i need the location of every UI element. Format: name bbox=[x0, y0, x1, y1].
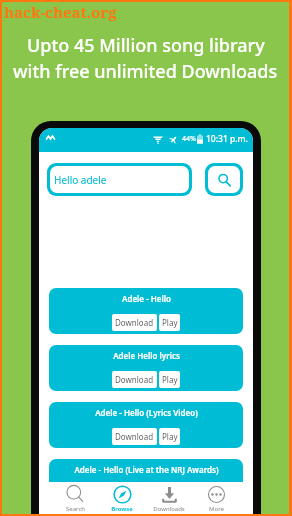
button[interactable]: Download bbox=[112, 428, 157, 445]
staticText: Play bbox=[162, 431, 178, 442]
staticText: Play bbox=[162, 374, 178, 385]
staticText: Hello adele bbox=[54, 173, 107, 187]
staticText: 10:31 p.m. bbox=[206, 133, 248, 145]
staticText: Adele - Hello (Live at the NRJ Awards) bbox=[74, 464, 219, 475]
staticText: Play bbox=[162, 317, 178, 328]
staticText: Download bbox=[115, 431, 154, 442]
button[interactable]: Adele - Hello (Lyrics Video) bbox=[49, 402, 243, 448]
staticText: Upto 45 Million song library bbox=[27, 33, 265, 58]
button[interactable]: Download bbox=[112, 314, 157, 331]
staticText: Downloads bbox=[153, 505, 185, 513]
button[interactable]: Search bbox=[208, 166, 240, 193]
staticText: Play bbox=[162, 488, 178, 499]
staticText: Download bbox=[115, 317, 154, 328]
staticText: Adele Hello lyrics bbox=[113, 350, 180, 361]
button[interactable]: Play bbox=[159, 314, 180, 331]
staticText: Download bbox=[115, 374, 154, 385]
staticText: More bbox=[209, 505, 224, 513]
button[interactable]: Download bbox=[112, 485, 157, 502]
staticText: Download bbox=[115, 488, 154, 499]
staticText: Adele - Hello bbox=[122, 293, 171, 304]
button[interactable]: Play bbox=[159, 428, 180, 445]
button[interactable]: Downloads bbox=[145, 482, 193, 516]
staticText: Browse bbox=[111, 505, 133, 513]
button[interactable]: More bbox=[192, 482, 240, 516]
staticText: with free unlimited Downloads bbox=[13, 59, 278, 84]
button[interactable]: Search bbox=[51, 482, 99, 516]
button[interactable]: Browse bbox=[98, 482, 146, 516]
button[interactable]: Adele - Hello bbox=[49, 288, 243, 334]
staticText: Adele - Hello (Lyrics Video) bbox=[95, 407, 198, 418]
button[interactable]: Adele - Hello (Live at the NRJ Awards) bbox=[49, 459, 243, 505]
staticText: 44% bbox=[182, 134, 196, 144]
button[interactable]: Play bbox=[159, 485, 180, 502]
button[interactable]: Play bbox=[159, 371, 180, 388]
staticText: hack-cheat.org bbox=[4, 2, 117, 22]
button[interactable]: Hello adele bbox=[50, 166, 189, 193]
button[interactable]: Download bbox=[112, 371, 157, 388]
staticText: Search bbox=[66, 505, 85, 513]
button[interactable]: Adele Hello lyrics bbox=[49, 345, 243, 391]
